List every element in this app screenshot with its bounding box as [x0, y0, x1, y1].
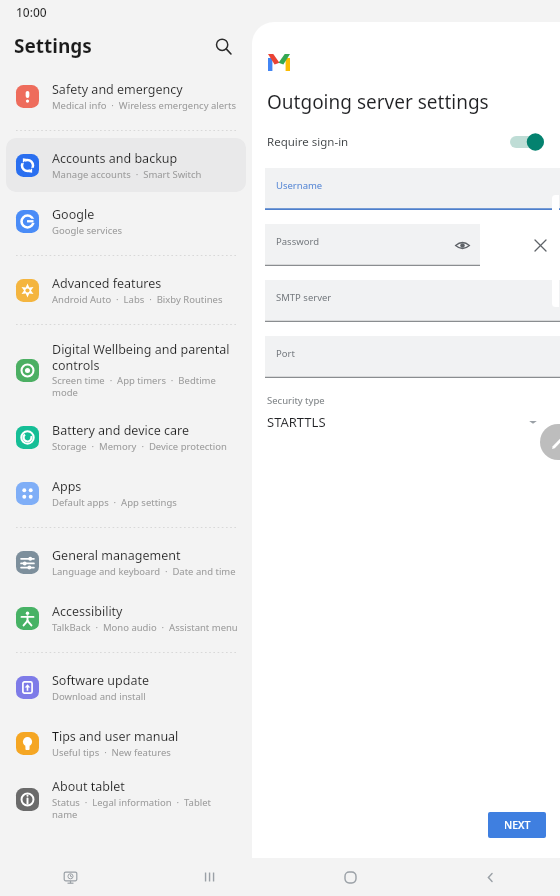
- button[interactable]: Recents: [140, 858, 280, 896]
- button[interactable]: Password: [265, 224, 480, 266]
- staticText: Manage accounts · Smart Switch: [52, 168, 202, 181]
- button[interactable]: Show password: [453, 236, 471, 254]
- staticText: TalkBack · Mono audio · Assistant menu: [52, 621, 238, 634]
- button[interactable]: Accounts and backup: [6, 138, 246, 192]
- button[interactable]: Google: [6, 194, 246, 248]
- staticText: Default apps · App settings: [52, 496, 177, 509]
- staticText: Apps: [52, 478, 82, 495]
- button[interactable]: Back: [420, 858, 560, 896]
- staticText: Useful tips · New features: [52, 746, 171, 759]
- button[interactable]: Require sign-in toggle: [510, 133, 544, 151]
- staticText: Username: [276, 179, 323, 192]
- staticText: About tablet: [52, 778, 125, 795]
- staticText: STARTTLS: [267, 413, 528, 431]
- staticText: Storage · Memory · Device protection: [52, 440, 227, 453]
- button[interactable]: Apps: [6, 466, 246, 520]
- staticText: Safety and emergency: [52, 81, 183, 98]
- staticText: Battery and device care: [52, 422, 190, 439]
- staticText: Language and keyboard · Date and time: [52, 565, 236, 578]
- staticText: Outgoing server settings: [267, 89, 489, 115]
- button[interactable]: Advanced features: [6, 263, 246, 317]
- staticText: Settings: [14, 33, 92, 59]
- button[interactable]: SMTP server: [265, 280, 560, 322]
- button[interactable]: Safety and emergency: [6, 69, 246, 123]
- button[interactable]: Software update: [6, 660, 246, 714]
- staticText: Digital Wellbeing and parental controls: [52, 341, 238, 373]
- staticText: Advanced features: [52, 275, 162, 292]
- staticText: Password: [276, 235, 319, 248]
- staticText: Medical info · Wireless emergency alerts: [52, 99, 237, 112]
- button[interactable]: Recents with clock: [0, 858, 140, 896]
- staticText: Google: [52, 206, 95, 223]
- button[interactable]: Home: [280, 858, 420, 896]
- staticText: SMTP server: [276, 291, 332, 304]
- staticText: Require sign-in: [267, 134, 510, 150]
- staticText: General management: [52, 547, 181, 564]
- staticText: Screen time · App timers · Bedtime mode: [52, 374, 238, 399]
- button[interactable]: Require sign-in: [252, 129, 560, 155]
- staticText: Download and install: [52, 690, 146, 703]
- button[interactable]: Username: [265, 168, 560, 210]
- button[interactable]: Accessibility: [6, 591, 246, 645]
- staticText: Google services: [52, 224, 123, 237]
- staticText: Accessibility: [52, 603, 123, 620]
- button[interactable]: General management: [6, 535, 246, 589]
- button[interactable]: Port: [265, 336, 560, 378]
- staticText: Security type: [267, 394, 325, 407]
- button[interactable]: About tablet: [6, 772, 246, 826]
- staticText: NEXT: [504, 818, 531, 832]
- button[interactable]: Digital Wellbeing and parental controls: [6, 332, 246, 408]
- staticText: Tips and user manual: [52, 728, 179, 745]
- button[interactable]: Battery and device care: [6, 410, 246, 464]
- button[interactable]: NEXT: [488, 812, 546, 838]
- staticText: Port: [276, 347, 295, 360]
- staticText: 10:00: [16, 4, 47, 20]
- staticText: Status · Legal information · Tablet name: [52, 796, 238, 821]
- button[interactable]: Security type: [252, 394, 560, 431]
- staticText: Accounts and backup: [52, 150, 178, 167]
- button[interactable]: Clear password: [529, 234, 551, 256]
- button[interactable]: Search: [208, 31, 238, 61]
- button[interactable]: Edit: [540, 424, 560, 460]
- staticText: Software update: [52, 672, 149, 689]
- staticText: Android Auto · Labs · Bixby Routines: [52, 293, 223, 306]
- button[interactable]: Tips and user manual: [6, 716, 246, 770]
